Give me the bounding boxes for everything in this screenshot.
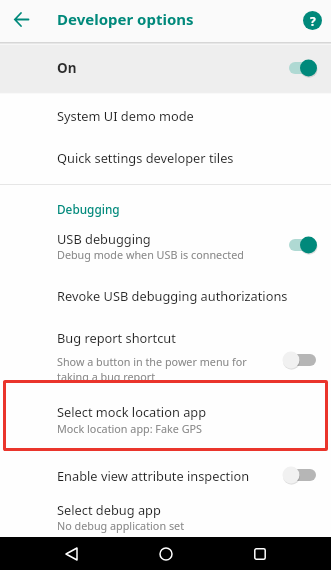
button[interactable]: Quick settings developer tiles — [0, 137, 331, 177]
button[interactable]: On — [0, 45, 331, 92]
staticText: Bug report shortcut — [57, 329, 176, 346]
button[interactable] — [119, 537, 213, 570]
button[interactable]: Enable view attribute inspection — [0, 451, 331, 499]
staticText: Mock location app: Fake GPS — [57, 421, 203, 436]
staticText: USB debugging — [57, 230, 151, 247]
button[interactable]: USB debugging — [0, 227, 331, 273]
button[interactable] — [213, 537, 307, 570]
button[interactable]: Select mock location app — [3, 380, 328, 451]
staticText: taking a bug report — [57, 369, 156, 380]
staticText: Enable view attribute inspection — [57, 467, 250, 484]
button[interactable]: ? — [303, 11, 322, 30]
staticText: ? — [310, 13, 316, 29]
staticText: Revoke USB debugging authorizations — [57, 287, 288, 304]
staticText: Quick settings developer tiles — [57, 149, 234, 166]
staticText: Select mock location app — [57, 403, 207, 420]
button[interactable] — [24, 537, 119, 570]
staticText: Debug mode when USB is connected — [57, 247, 244, 262]
button[interactable]: Select debug app — [0, 499, 331, 537]
button[interactable]: System UI demo mode — [0, 94, 331, 137]
button[interactable]: Revoke USB debugging authorizations — [0, 273, 331, 318]
staticText: Developer options — [57, 9, 194, 29]
button[interactable]: Bug report shortcut — [0, 318, 331, 380]
staticText: No debug application set — [57, 518, 185, 533]
staticText: System UI demo mode — [57, 107, 194, 124]
button[interactable] — [0, 0, 42, 40]
staticText: Debugging — [57, 201, 120, 217]
staticText: Select debug app — [57, 501, 161, 518]
staticText: On — [57, 59, 77, 77]
staticText: Show a button in the power menu for — [57, 354, 247, 369]
